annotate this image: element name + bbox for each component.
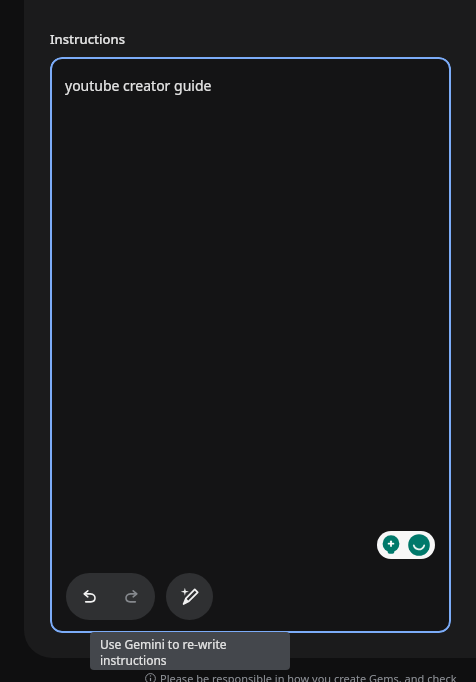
staticText: Use Gemini to re-write	[100, 636, 227, 652]
button[interactable]: youtube creator guide	[50, 57, 451, 633]
button[interactable]: Use Gemini to re-write instructions	[166, 573, 213, 620]
staticText: youtube creator guide	[65, 76, 212, 95]
staticText: instructions	[100, 652, 167, 668]
button[interactable]: Redo	[110, 573, 155, 620]
button[interactable]: Undo	[66, 573, 110, 620]
staticText: Instructions	[50, 30, 125, 48]
button[interactable]: Gem suggestion	[377, 531, 435, 559]
staticText: Please be responsible in how you create …	[160, 671, 457, 682]
